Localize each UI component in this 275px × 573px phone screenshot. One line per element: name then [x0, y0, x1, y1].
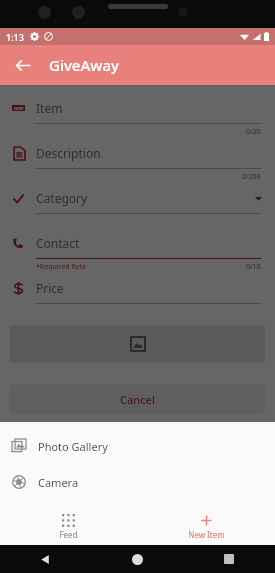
button[interactable]: Photo Gallery [0, 428, 275, 464]
button[interactable]: New Item [137, 508, 275, 545]
staticText: Photo Gallery [38, 439, 108, 454]
staticText: 0/200 [242, 172, 261, 182]
button[interactable]: Back [6, 48, 40, 82]
staticText: 0/10 [246, 262, 261, 272]
button[interactable]: Camera [0, 464, 275, 500]
button[interactable]: Back [40, 554, 51, 565]
staticText: NEW [14, 106, 24, 111]
staticText: GiveAway [49, 55, 119, 75]
staticText: 0/20 [246, 127, 261, 137]
button[interactable]: Price [0, 273, 275, 318]
staticText: Item [36, 100, 63, 116]
button[interactable]: Category [0, 183, 275, 228]
staticText: Camera [38, 475, 79, 490]
staticText: 1:13 [6, 31, 24, 43]
staticText: Description [36, 145, 101, 161]
button[interactable]: Contact [0, 228, 275, 273]
staticText: Price [36, 280, 64, 296]
button[interactable]: Feed [0, 508, 137, 545]
staticText: Category [36, 190, 88, 206]
staticText: Feed [59, 529, 78, 540]
staticText: *Required field [36, 262, 86, 272]
staticText: Contact [36, 235, 80, 251]
button[interactable]: Description [0, 138, 275, 183]
button[interactable]: Cancel [10, 384, 265, 414]
button[interactable]: Home [132, 554, 143, 565]
button[interactable]: Recents [224, 554, 234, 564]
button[interactable]: NEW [0, 93, 275, 138]
staticText: Cancel [120, 392, 155, 407]
staticText: New Item [188, 529, 225, 540]
button[interactable]: Add photo [10, 325, 265, 363]
